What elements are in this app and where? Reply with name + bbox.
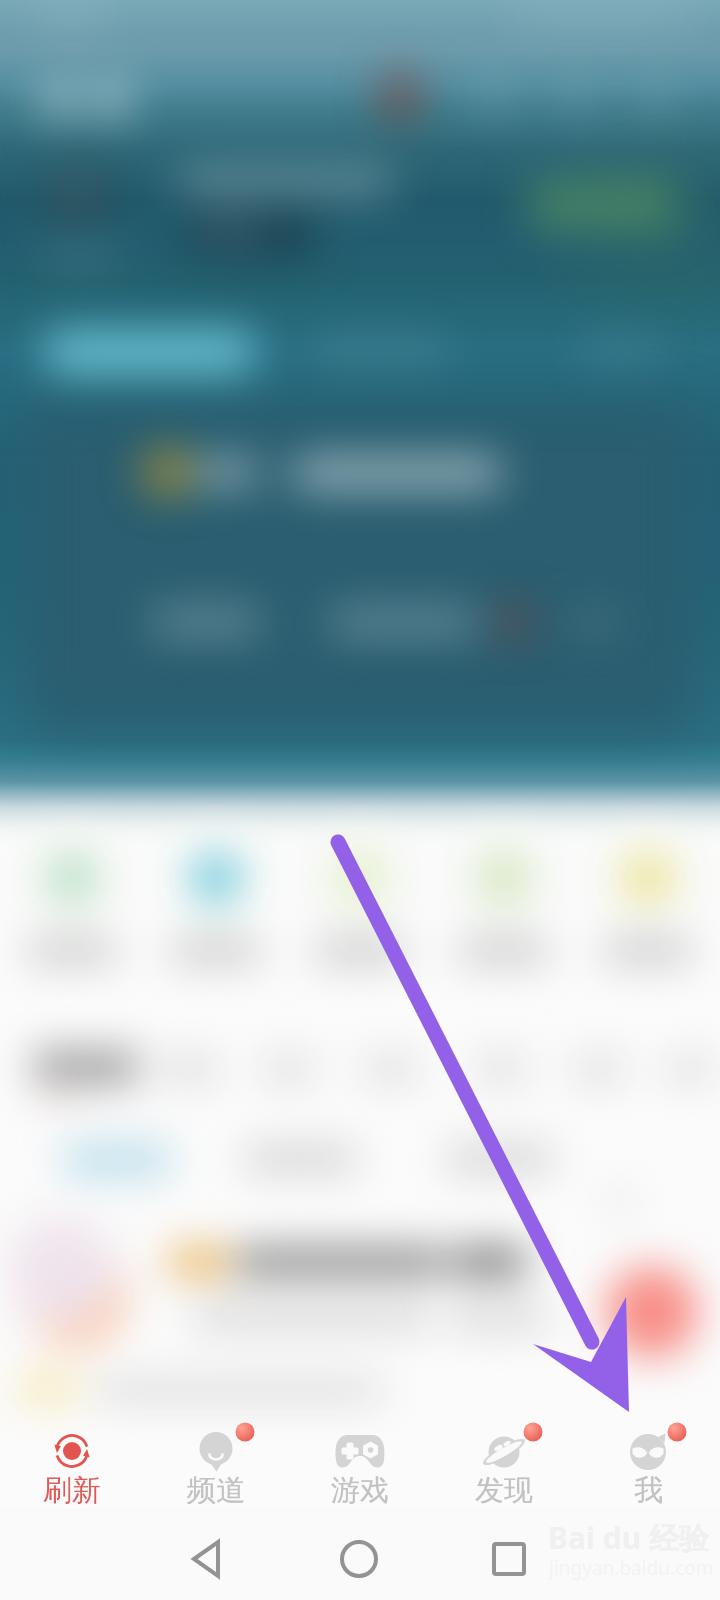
button[interactable]: Back [177, 1529, 237, 1589]
button[interactable]: 频道 [144, 1411, 288, 1507]
staticText: 我 [634, 1472, 663, 1504]
staticText: 游戏 [331, 1472, 389, 1504]
button[interactable]: 我 [576, 1411, 720, 1507]
button[interactable]: 发现 [432, 1411, 576, 1507]
button[interactable]: 游戏 [288, 1411, 432, 1507]
button[interactable]: Home [329, 1529, 389, 1589]
staticText: 刷新 [43, 1472, 101, 1504]
staticText: 发现 [475, 1472, 533, 1504]
staticText: Bai du 经验 [548, 1517, 709, 1558]
staticText: 频道 [187, 1472, 245, 1504]
button[interactable]: 刷新 [0, 1411, 144, 1507]
button[interactable]: Recent apps [479, 1529, 539, 1589]
